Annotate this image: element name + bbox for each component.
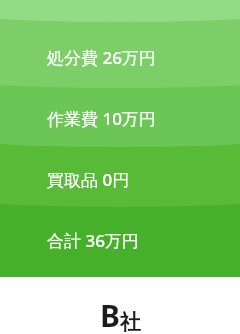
staticText: 社: [120, 309, 141, 334]
button[interactable]: 処分費 26万円: [0, 0, 240, 277]
staticText: B: [100, 295, 120, 334]
button[interactable]: 処分費 26万円: [0, 46, 240, 69]
button[interactable]: B社 ロゴ: [0, 277, 240, 334]
button[interactable]: 作業費 10万円: [0, 107, 240, 130]
button[interactable]: 合計 36万円: [0, 229, 240, 252]
button[interactable]: 買取品 0円: [0, 168, 240, 191]
